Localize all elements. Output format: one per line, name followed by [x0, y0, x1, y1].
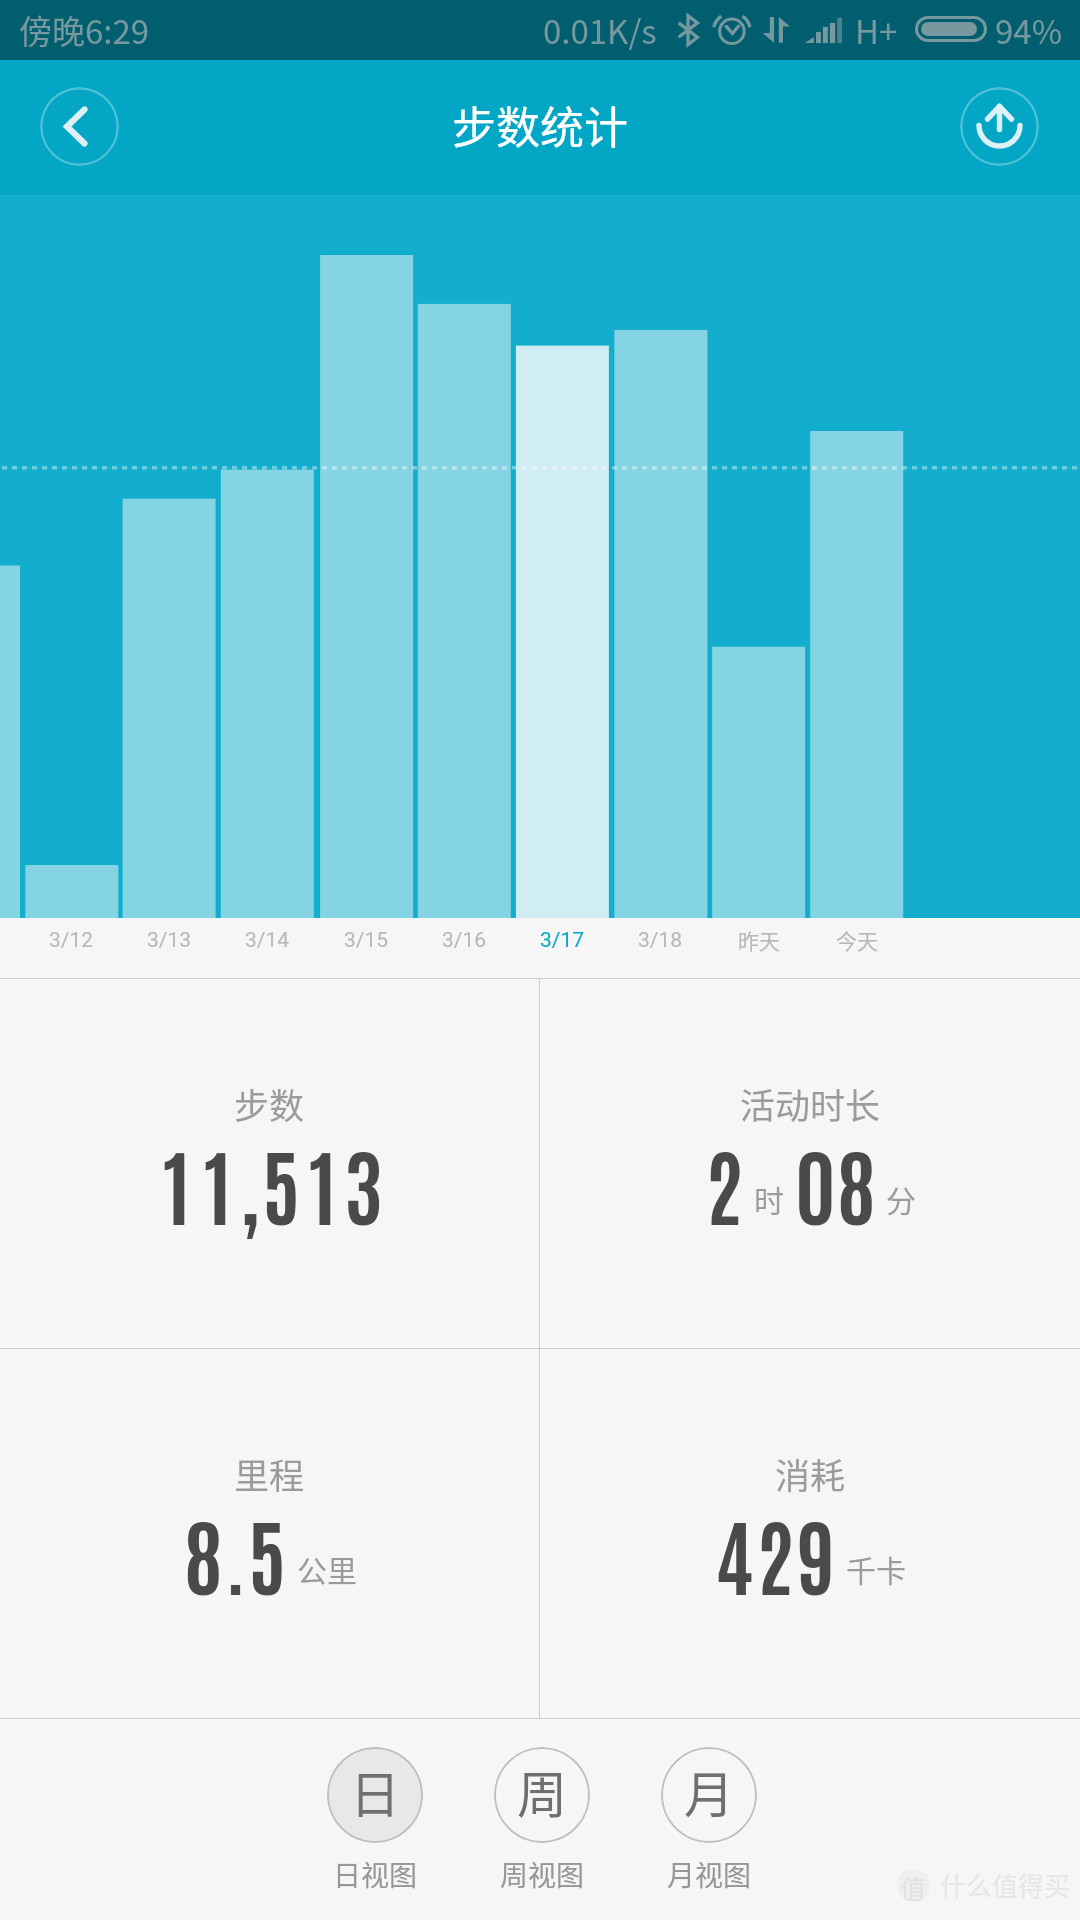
- staticText: H+: [855, 6, 898, 54]
- staticText: 周视图: [500, 1854, 585, 1895]
- staticText: 日: [350, 1755, 400, 1827]
- staticText: 里程: [234, 1448, 305, 1499]
- staticText: 0.01K/s: [543, 6, 657, 54]
- staticText: 月视图: [667, 1854, 752, 1895]
- button[interactable]: 里程: [0, 1349, 539, 1718]
- staticText: 1: [163, 1129, 191, 1236]
- staticText: 3/13: [147, 928, 192, 953]
- staticText: 3/17: [540, 928, 585, 953]
- staticText: 周: [517, 1755, 567, 1827]
- staticText: 步数统计: [452, 93, 628, 157]
- staticText: 今天: [836, 925, 878, 955]
- staticText: 值: [900, 1869, 927, 1902]
- staticText: 傍晚6:29: [19, 6, 150, 54]
- staticText: 3: [344, 1129, 383, 1236]
- staticText: 公里: [297, 1547, 357, 1590]
- staticText: 4: [715, 1499, 754, 1606]
- button[interactable]: 月: [643, 1747, 775, 1917]
- staticText: 什么值得买: [940, 1866, 1071, 1904]
- button[interactable]: 步数: [0, 979, 539, 1348]
- staticText: 消耗: [775, 1448, 846, 1499]
- staticText: 0: [795, 1129, 836, 1236]
- staticText: .: [225, 1499, 247, 1606]
- staticText: 月: [684, 1755, 734, 1827]
- staticText: 3/16: [442, 928, 487, 953]
- staticText: 时: [754, 1177, 784, 1220]
- staticText: 9: [797, 1499, 836, 1606]
- staticText: 1: [309, 1129, 337, 1236]
- staticText: 8: [837, 1129, 876, 1236]
- staticText: 活动时长: [740, 1078, 881, 1129]
- staticText: 千卡: [846, 1547, 906, 1590]
- button[interactable]: Share: [960, 87, 1039, 166]
- staticText: 日视图: [333, 1854, 418, 1895]
- staticText: 5: [262, 1129, 301, 1236]
- staticText: 5: [248, 1499, 287, 1606]
- staticText: 步数: [234, 1078, 305, 1129]
- button[interactable]: 周: [476, 1747, 608, 1917]
- staticText: 3/15: [344, 928, 389, 953]
- staticText: 昨天: [738, 925, 780, 955]
- staticText: 2: [705, 1129, 744, 1236]
- button[interactable]: 消耗: [540, 1349, 1080, 1718]
- staticText: 分: [886, 1177, 916, 1220]
- staticText: ,: [240, 1129, 260, 1236]
- button[interactable]: 日: [309, 1747, 441, 1917]
- button[interactable]: Back: [40, 87, 119, 166]
- staticText: 2: [756, 1499, 795, 1606]
- staticText: 3/18: [638, 928, 683, 953]
- staticText: 1: [204, 1129, 232, 1236]
- staticText: 8: [184, 1499, 223, 1606]
- staticText: 3/14: [245, 928, 290, 953]
- staticText: 94%: [995, 6, 1063, 54]
- staticText: 3/12: [49, 928, 94, 953]
- button[interactable]: 活动时长: [540, 979, 1080, 1348]
